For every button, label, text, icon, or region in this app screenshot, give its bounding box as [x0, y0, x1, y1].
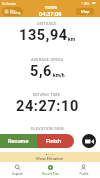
staticText: MOVING TIME: [33, 92, 61, 97]
button[interactable]: Show Elevation: [0, 152, 100, 162]
button[interactable]: Record Trail: [34, 162, 67, 178]
staticText: km/h: [53, 72, 65, 78]
button[interactable]: Explore: [0, 162, 34, 178]
staticText: Finish: [46, 138, 62, 145]
staticText: 30%: [84, 2, 90, 5]
button[interactable]: Profile: [67, 162, 100, 178]
staticText: 24:27:10: [16, 98, 79, 115]
button[interactable]: Live Tracking: [2, 7, 23, 16]
staticText: Resume: [8, 138, 29, 145]
button[interactable]: Map: [76, 8, 94, 15]
staticText: 5,6: [30, 63, 53, 80]
staticText: Profile: [79, 172, 89, 176]
staticText: ELEVATION GAIN: [31, 126, 64, 131]
staticText: 135,94: [19, 27, 68, 44]
staticText: No Service: [2, 2, 16, 5]
button[interactable]: Record video: [82, 134, 96, 148]
staticText: Explore: [12, 172, 23, 176]
staticText: DISTANCE: [37, 21, 57, 26]
staticText: Map: [81, 9, 90, 14]
button[interactable]: Resume: [0, 134, 37, 148]
staticText: km: [68, 36, 76, 42]
staticText: Show Elevation: [36, 156, 64, 161]
staticText: Record Trail: [42, 172, 59, 176]
button[interactable]: Finish: [37, 134, 74, 148]
staticText: PAUSED: [45, 6, 57, 10]
staticText: 04:37:08: [39, 11, 62, 17]
staticText: Live Tracking: [10, 9, 21, 15]
staticText: AVERAGE SPEED: [31, 57, 64, 62]
